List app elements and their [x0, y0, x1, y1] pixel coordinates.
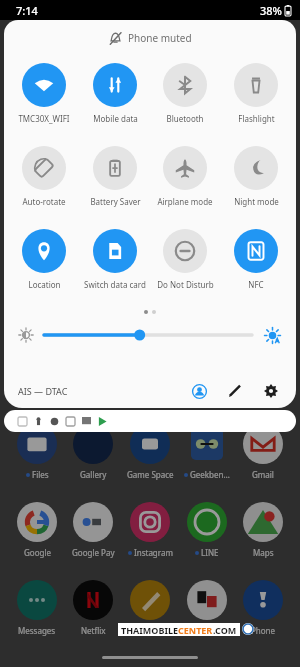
staticText: Battery Saver — [90, 196, 141, 207]
button[interactable]: OnePlus — [179, 580, 235, 636]
button[interactable]: Battery Saver — [83, 139, 147, 207]
staticText: Maps — [253, 547, 274, 558]
button[interactable]: Airplane mode — [153, 139, 217, 207]
staticText: Instagram — [134, 547, 173, 558]
staticText: Messages — [18, 625, 56, 636]
staticText: Google — [24, 547, 51, 558]
staticText: OnePlus — [191, 625, 223, 636]
staticText: Location — [28, 279, 61, 290]
button[interactable]: LINE — [179, 502, 235, 558]
button[interactable]: Location — [12, 222, 76, 290]
button[interactable]: Instagram — [122, 502, 178, 558]
staticText: Flashlight — [238, 113, 275, 124]
button[interactable]: Game Space — [122, 424, 178, 480]
button[interactable]: Netflix — [65, 580, 121, 636]
staticText: Phone muted — [128, 31, 192, 45]
button[interactable]: Do Not Disturb — [153, 222, 217, 290]
button[interactable]: Notes — [122, 580, 178, 636]
button[interactable]: Maps — [235, 502, 291, 558]
staticText: Auto-rotate — [22, 196, 66, 207]
staticText: 7:14 — [16, 3, 38, 18]
button[interactable]: Phone — [235, 580, 291, 636]
button[interactable]: Settings — [258, 378, 284, 404]
staticText: Gallery — [80, 469, 107, 480]
staticText: Google Pay — [72, 547, 115, 558]
staticText: CENTER — [178, 624, 213, 636]
button[interactable]: TMC30X_WIFI — [12, 56, 76, 124]
button[interactable]: Messages — [9, 580, 65, 636]
staticText: NFC — [248, 279, 264, 290]
staticText: Phone — [251, 625, 276, 636]
staticText: .COM — [213, 624, 237, 636]
button[interactable]: Google Pay — [65, 502, 121, 558]
button[interactable]: Edit tiles — [222, 378, 248, 404]
staticText: LINE — [201, 547, 219, 558]
staticText: Do Not Disturb — [157, 279, 214, 290]
button[interactable]: Gmail — [235, 424, 291, 480]
button[interactable]: Gallery — [65, 424, 121, 480]
button[interactable]: Auto-rotate — [12, 139, 76, 207]
staticText: Airplane mode — [157, 196, 213, 207]
staticText: Night mode — [234, 196, 279, 207]
staticText: Switch data card — [84, 279, 146, 290]
staticText: Netflix — [81, 625, 106, 636]
button[interactable]: User account — [186, 378, 212, 404]
button[interactable] — [4, 410, 296, 432]
button[interactable] — [44, 325, 252, 345]
button[interactable]: Switch data card — [83, 222, 147, 290]
staticText: Gmail — [252, 469, 274, 480]
staticText: Bluetooth — [166, 113, 204, 124]
staticText: THAIMOBILE — [121, 624, 178, 636]
staticText: Game Space — [127, 469, 174, 480]
button[interactable]: Mobile data — [83, 56, 147, 124]
staticText: TMC30X_WIFI — [18, 113, 70, 124]
button[interactable]: Files — [9, 424, 65, 480]
staticText: Geekben… — [190, 469, 230, 480]
button[interactable]: Night mode — [224, 139, 288, 207]
button[interactable]: Google — [9, 502, 65, 558]
staticText: Mobile data — [93, 113, 138, 124]
staticText: Notes — [139, 625, 162, 636]
staticText: AIS — DTAC — [18, 385, 68, 397]
button[interactable]: NFC — [224, 222, 288, 290]
staticText: Files — [32, 469, 49, 480]
button[interactable]: Auto brightness — [262, 325, 282, 345]
button[interactable]: Flashlight — [224, 56, 288, 124]
button[interactable]: Bluetooth — [153, 56, 217, 124]
button[interactable]: Geekben… — [179, 424, 235, 480]
staticText: 38% — [260, 3, 282, 18]
